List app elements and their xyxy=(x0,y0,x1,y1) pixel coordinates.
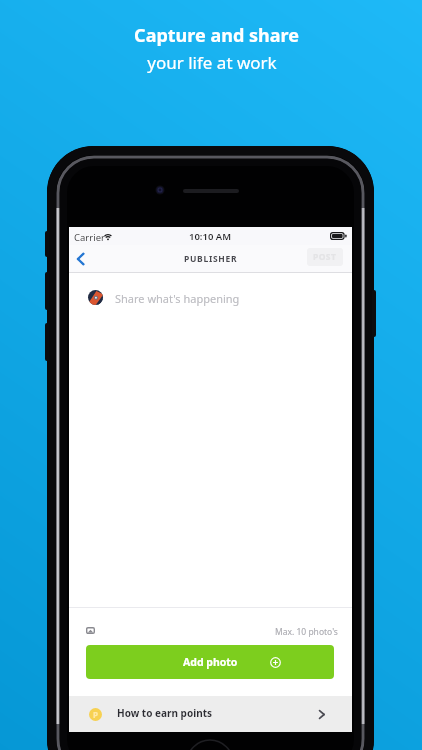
staticText: your life at work xyxy=(147,51,277,74)
button[interactable]: P xyxy=(69,696,352,732)
staticText: Share what's happening xyxy=(115,291,240,306)
staticText: P xyxy=(93,709,98,720)
button[interactable]: Back xyxy=(70,248,92,270)
staticText: PUBLISHER xyxy=(184,253,238,265)
button[interactable]: Add photo xyxy=(86,645,334,679)
staticText: Max. 10 photo's xyxy=(275,626,338,638)
staticText: 10:10 AM xyxy=(189,230,232,243)
staticText: POST xyxy=(313,251,337,263)
staticText: Carrier xyxy=(74,231,105,244)
button[interactable]: POST xyxy=(307,248,343,266)
staticText: How to earn points xyxy=(117,706,212,720)
staticText: Add photo xyxy=(183,655,238,669)
staticText: Capture and share xyxy=(134,23,299,48)
